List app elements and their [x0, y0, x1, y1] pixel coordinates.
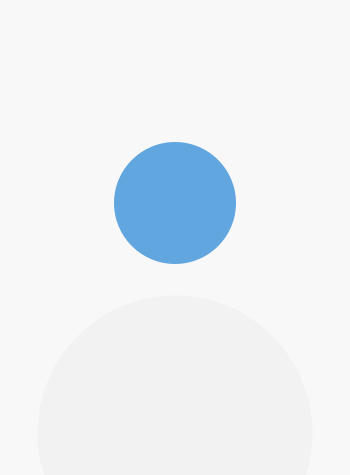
button[interactable]: Profile photo [0, 0, 350, 475]
